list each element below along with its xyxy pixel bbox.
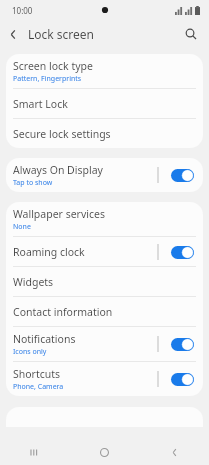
button[interactable]: Toggle Notifications xyxy=(167,333,197,355)
button[interactable]: Roaming clock xyxy=(6,237,203,266)
button[interactable]: Smart Lock xyxy=(6,89,203,118)
staticText: Wallpaper services xyxy=(13,207,105,221)
button[interactable]: Back xyxy=(139,440,209,465)
button[interactable]: Always On Display xyxy=(6,158,203,192)
button[interactable]: Toggle Always On Display xyxy=(167,164,197,186)
staticText: Pattern, Fingerprints xyxy=(13,74,82,84)
button[interactable]: Shortcuts xyxy=(6,362,203,396)
staticText: Widgets xyxy=(13,275,54,289)
staticText: Secure lock settings xyxy=(13,127,111,141)
staticText: 10:00 xyxy=(12,5,33,16)
button[interactable]: Search xyxy=(179,22,203,46)
button[interactable]: Notifications xyxy=(6,327,203,361)
staticText: Shortcuts xyxy=(13,367,61,381)
button[interactable]: Widgets xyxy=(6,267,203,296)
button[interactable]: Screen lock type xyxy=(6,54,203,88)
button[interactable]: Toggle Roaming clock xyxy=(167,241,197,263)
staticText: None xyxy=(13,222,31,232)
button[interactable]: Contact information xyxy=(6,297,203,326)
staticText: Contact information xyxy=(13,305,113,319)
staticText: Smart Lock xyxy=(13,97,68,111)
button[interactable]: Back xyxy=(0,21,26,47)
staticText: Screen lock type xyxy=(13,59,93,73)
button[interactable]: Home xyxy=(69,440,139,465)
button[interactable]: Wallpaper services xyxy=(6,202,203,236)
staticText: Lock screen xyxy=(28,26,95,42)
staticText: Icons only xyxy=(13,347,47,357)
staticText: Tap to show xyxy=(13,178,53,188)
staticText: Always On Display xyxy=(13,163,103,177)
staticText: Phone, Camera xyxy=(13,382,64,392)
button[interactable]: Toggle Shortcuts xyxy=(167,368,197,390)
staticText: Notifications xyxy=(13,332,76,346)
button[interactable]: Secure lock settings xyxy=(6,119,203,148)
staticText: Roaming clock xyxy=(13,245,85,259)
button[interactable]: Recent apps xyxy=(0,440,69,465)
